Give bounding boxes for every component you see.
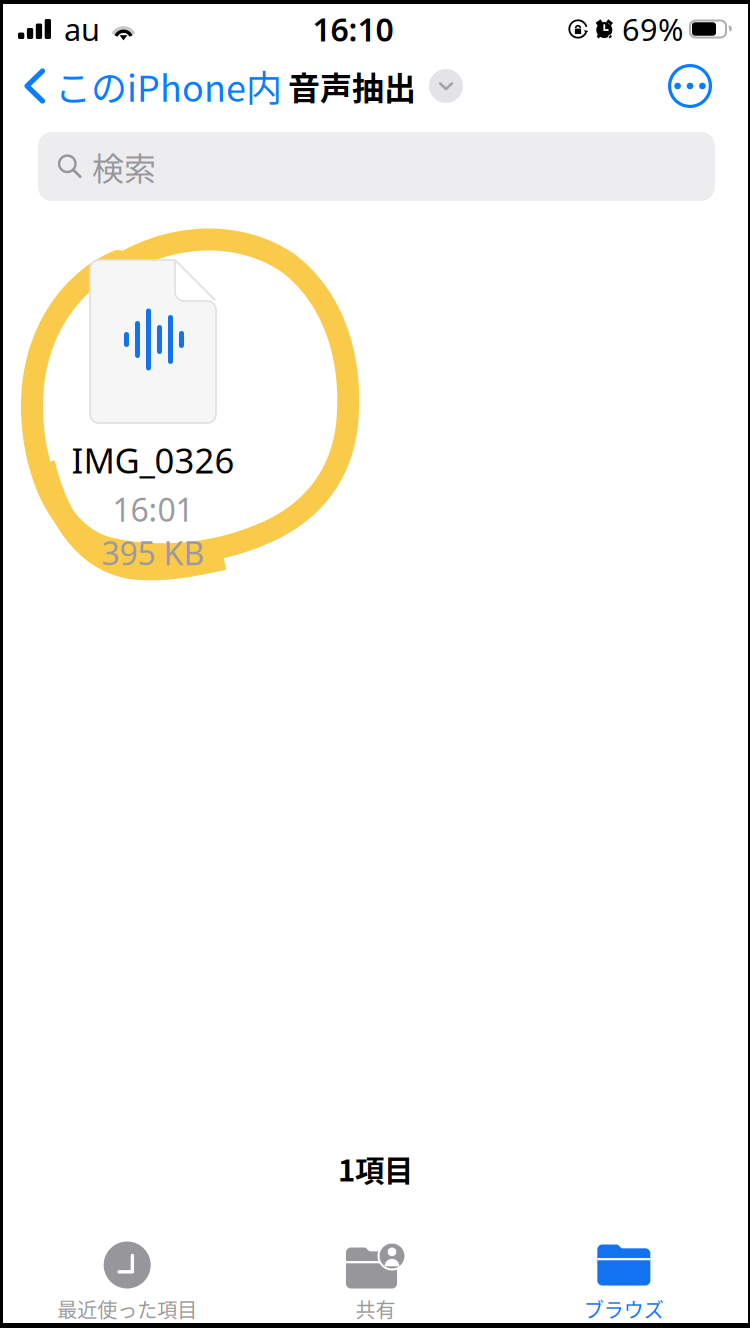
staticText: 395 KB [101, 531, 204, 574]
staticText: 音声抽出 [288, 63, 416, 109]
staticText: 16:01 [112, 488, 193, 530]
staticText: au [64, 9, 100, 49]
staticText: このiPhone内 [55, 60, 282, 112]
staticText: 検索 [92, 143, 156, 190]
button[interactable]: 最近使った項目 [3, 1241, 251, 1323]
button[interactable]: 検索 [38, 132, 715, 201]
button[interactable]: Folder options [416, 61, 463, 111]
staticText: 共有 [355, 1294, 395, 1323]
button[interactable]: IMG_0326 [50, 260, 256, 574]
button[interactable]: 共有 [251, 1241, 500, 1323]
button[interactable]: ブラウズ [500, 1241, 748, 1323]
staticText: 最近使った項目 [57, 1294, 197, 1323]
staticText: ブラウズ [584, 1294, 664, 1323]
staticText: 1項目 [338, 1147, 413, 1190]
staticText: IMG_0326 [71, 437, 234, 483]
button[interactable]: このiPhone内 [3, 52, 282, 120]
staticText: 69% [622, 9, 683, 49]
button[interactable]: More [668, 56, 748, 116]
staticText: 16:10 [312, 8, 393, 50]
